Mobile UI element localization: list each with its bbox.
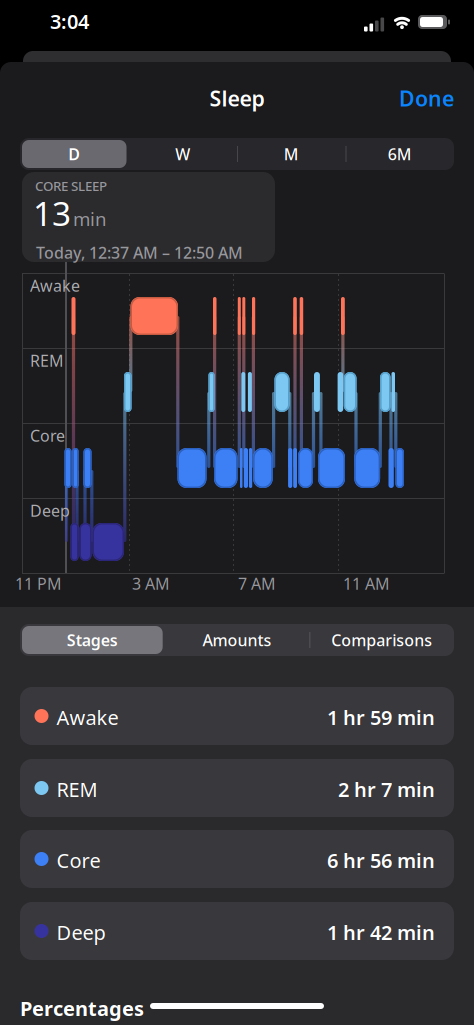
staticText: CORE SLEEP xyxy=(35,177,107,195)
staticText: Awake xyxy=(30,275,80,296)
staticText: 1 hr 42 min xyxy=(327,919,435,946)
staticText: 6M xyxy=(388,143,412,165)
button[interactable]: Stages xyxy=(20,626,165,654)
button[interactable]: Amounts xyxy=(165,626,309,654)
staticText: Amounts xyxy=(202,629,271,651)
staticText: Today, 12:37 AM – 12:50 AM xyxy=(36,242,243,263)
button[interactable]: REM xyxy=(20,759,454,817)
staticText: D xyxy=(68,143,80,165)
staticText: REM xyxy=(30,350,64,371)
button[interactable]: Done xyxy=(399,84,454,112)
staticText: 3:04 xyxy=(50,8,89,35)
staticText: Percentages xyxy=(20,995,144,1022)
staticText: min xyxy=(73,206,107,231)
button[interactable]: Awake xyxy=(20,687,454,745)
staticText: 11 AM xyxy=(343,573,390,594)
button[interactable]: 6M xyxy=(345,140,454,168)
staticText: Sleep xyxy=(209,84,264,112)
button[interactable]: W xyxy=(128,140,237,168)
staticText: 6 hr 56 min xyxy=(327,847,435,874)
button[interactable]: M xyxy=(237,140,345,168)
staticText: W xyxy=(175,143,190,165)
staticText: 11 PM xyxy=(15,573,62,594)
staticText: Awake xyxy=(56,704,118,731)
button[interactable]: Deep xyxy=(20,902,454,960)
staticText: M xyxy=(284,143,299,165)
staticText: 3 AM xyxy=(132,573,170,594)
button[interactable]: D xyxy=(20,140,128,168)
staticText: Stages xyxy=(67,629,118,651)
staticText: Deep xyxy=(30,500,70,521)
staticText: 7 AM xyxy=(238,573,276,594)
staticText: REM xyxy=(56,776,97,803)
staticText: Core xyxy=(56,847,100,874)
button[interactable]: Core xyxy=(20,830,454,888)
staticText: Deep xyxy=(56,919,105,946)
staticText: Comparisons xyxy=(331,629,432,651)
staticText: 1 hr 59 min xyxy=(327,704,435,731)
button[interactable]: Comparisons xyxy=(309,626,454,654)
staticText: 13 xyxy=(33,191,71,235)
staticText: 2 hr 7 min xyxy=(338,776,435,803)
staticText: Core xyxy=(30,425,65,446)
staticText: Done xyxy=(399,84,454,112)
